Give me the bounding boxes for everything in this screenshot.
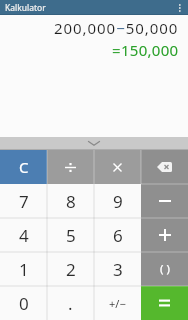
staticText: 6 (113, 224, 123, 247)
button[interactable]: 6 (94, 218, 141, 252)
button[interactable]: C (0, 150, 47, 184)
staticText: 4 (19, 224, 29, 247)
button[interactable]: 3 (94, 252, 141, 286)
button[interactable]: 1 (0, 252, 47, 286)
button[interactable]: 5 (47, 218, 94, 252)
button[interactable] (141, 150, 188, 184)
button[interactable] (47, 150, 94, 184)
staticText: Kalkulator (5, 2, 46, 14)
button[interactable]: +/− (94, 286, 141, 320)
button[interactable]: 0 (0, 286, 47, 320)
button[interactable]: 7 (0, 184, 47, 218)
staticText: 5 (66, 224, 76, 247)
staticText: =150,000 (112, 40, 179, 60)
button[interactable] (141, 184, 188, 218)
button[interactable] (0, 137, 188, 150)
staticText: 200,000−50,000 (54, 18, 179, 38)
staticText: ( ) (160, 261, 170, 277)
button[interactable]: 4 (0, 218, 47, 252)
staticText: 9 (113, 190, 123, 213)
button[interactable]: 8 (47, 184, 94, 218)
button[interactable]: 9 (94, 184, 141, 218)
staticText: 3 (113, 258, 123, 281)
staticText: 2 (66, 258, 76, 281)
staticText: . (68, 292, 73, 315)
staticText: 8 (66, 190, 76, 213)
staticText: C (19, 157, 29, 177)
staticText: 1 (19, 258, 29, 281)
staticText: 7 (19, 190, 29, 213)
staticText: 0 (19, 292, 29, 315)
button[interactable] (94, 150, 141, 184)
button[interactable]: ( ) (141, 252, 188, 286)
button[interactable] (141, 218, 188, 252)
button[interactable] (172, 0, 188, 15)
button[interactable] (141, 286, 188, 320)
button[interactable]: . (47, 286, 94, 320)
button[interactable]: 2 (47, 252, 94, 286)
staticText: +/− (109, 296, 126, 311)
